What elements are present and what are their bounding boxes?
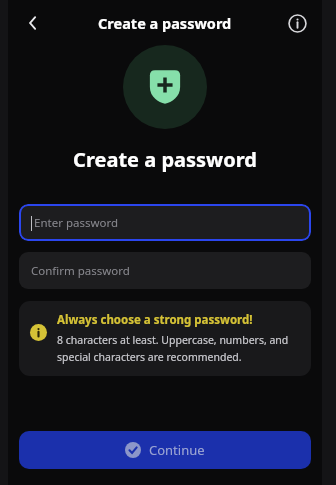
staticText: 8 characters at least. Uppercase, number… (57, 333, 299, 364)
button[interactable]: Continue (19, 431, 311, 469)
button[interactable]: Enter password (19, 204, 311, 241)
button[interactable]: Always choose a strong password! (19, 301, 311, 376)
staticText: Confirm password (31, 263, 130, 279)
staticText: Create a password (8, 146, 322, 173)
button[interactable]: Confirm password (19, 252, 311, 289)
staticText: Always choose a strong password! (57, 312, 253, 328)
staticText: Continue (149, 441, 205, 459)
staticText: Create a password (98, 13, 232, 33)
button[interactable]: Back (14, 4, 52, 42)
button[interactable]: Information (280, 6, 314, 40)
staticText: Enter password (34, 215, 119, 231)
